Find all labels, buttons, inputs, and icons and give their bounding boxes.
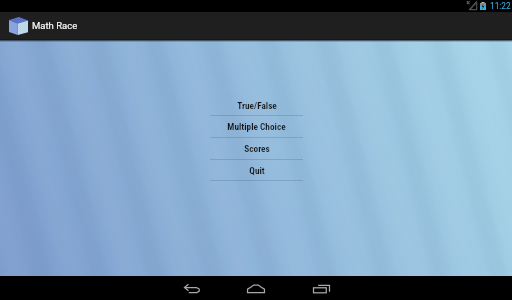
staticText: Quit: [249, 165, 265, 176]
button[interactable]: Recent apps: [299, 276, 343, 300]
staticText: 11:22: [490, 1, 511, 11]
button[interactable]: Scores: [210, 137, 303, 159]
button[interactable]: Home: [234, 276, 278, 300]
button[interactable]: Back: [170, 276, 214, 300]
staticText: Math Race: [32, 20, 78, 31]
button[interactable]: Quit: [210, 159, 303, 181]
button[interactable]: True/False: [210, 94, 303, 116]
button[interactable]: Multiple Choice: [210, 115, 303, 137]
staticText: Scores: [244, 143, 270, 154]
staticText: Multiple Choice: [227, 121, 286, 132]
staticText: True/False: [237, 100, 277, 111]
